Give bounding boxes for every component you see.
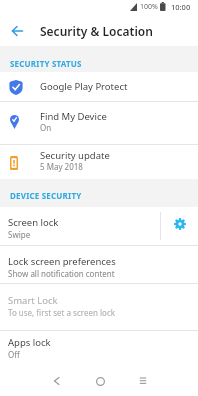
- staticText: Apps lock: [8, 336, 51, 349]
- staticText: Find My Device: [40, 110, 107, 123]
- button[interactable]: [6, 20, 28, 42]
- button[interactable]: [131, 369, 155, 393]
- staticText: On: [40, 122, 52, 133]
- button[interactable]: Lock screen preferences: [0, 245, 198, 283]
- staticText: Security & Location: [40, 23, 153, 39]
- button[interactable]: [166, 209, 194, 239]
- staticText: DEVICE SECURITY: [10, 190, 82, 201]
- staticText: 100%: [140, 2, 158, 12]
- staticText: Show all notification content: [8, 268, 115, 279]
- staticText: Off: [8, 349, 20, 360]
- staticText: Google Play Protect: [40, 80, 128, 93]
- button[interactable]: Screen lock: [0, 207, 160, 245]
- staticText: 10:00: [171, 2, 191, 12]
- staticText: Screen lock: [8, 216, 59, 229]
- button[interactable]: Security update: [0, 144, 198, 179]
- staticText: SECURITY STATUS: [10, 58, 82, 69]
- staticText: Swipe: [8, 229, 31, 240]
- staticText: Smart Lock: [8, 294, 58, 307]
- button[interactable]: [44, 369, 68, 393]
- button[interactable]: Find My Device: [0, 101, 198, 144]
- button[interactable]: Apps lock: [0, 330, 198, 367]
- button[interactable]: Google Play Protect: [0, 72, 198, 101]
- staticText: To use, first set a screen lock: [8, 307, 115, 318]
- button[interactable]: [88, 369, 112, 393]
- staticText: Lock screen preferences: [8, 255, 116, 268]
- staticText: Security update: [40, 149, 110, 162]
- button[interactable]: Smart Lock: [0, 283, 198, 330]
- staticText: 5 May 2018: [40, 161, 83, 172]
